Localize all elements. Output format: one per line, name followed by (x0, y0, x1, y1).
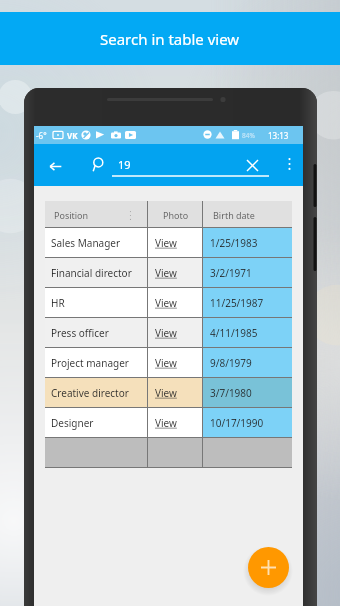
button[interactable]: Creative director (45, 378, 292, 408)
staticText: -6° (36, 130, 47, 141)
staticText: Position (54, 209, 89, 221)
staticText: View (155, 356, 177, 370)
staticText: 19 (118, 157, 131, 172)
button[interactable]: Project manager (45, 348, 292, 378)
staticText: 3/7/1980 (210, 386, 252, 400)
staticText: 1/25/1983 (210, 236, 258, 250)
staticText: Photo (163, 209, 189, 221)
staticText: 13:13 (268, 130, 289, 141)
button[interactable]: Add (248, 547, 289, 588)
staticText: Financial director (51, 266, 132, 280)
staticText: Birth date (213, 209, 255, 221)
button[interactable]: HR (45, 288, 292, 318)
staticText: View (155, 386, 177, 400)
staticText: 9/8/1979 (210, 356, 252, 370)
staticText: 3/2/1971 (210, 266, 252, 280)
staticText: Designer (51, 416, 94, 430)
staticText: HR (51, 296, 65, 310)
staticText: View (155, 326, 177, 340)
button[interactable]: Sales Manager (45, 228, 292, 258)
staticText: VK (67, 130, 78, 141)
staticText: 11/25/1987 (210, 296, 264, 310)
button[interactable]: Clear search (240, 153, 265, 178)
button[interactable]: More options (278, 153, 300, 175)
staticText: View (155, 416, 177, 430)
staticText: Press officer (51, 326, 109, 340)
button[interactable]: Back (42, 153, 69, 180)
staticText: Search in table view (100, 29, 240, 49)
staticText: 84% (242, 131, 255, 140)
staticText: View (155, 296, 177, 310)
staticText: Project manager (51, 356, 129, 370)
button[interactable]: Designer (45, 408, 292, 438)
staticText: 4/11/1985 (210, 326, 258, 340)
button[interactable]: Press officer (45, 318, 292, 348)
button[interactable]: Financial director (45, 258, 292, 288)
staticText: 10/17/1990 (210, 416, 264, 430)
staticText: Creative director (51, 386, 129, 400)
staticText: View (155, 236, 177, 250)
staticText: Sales Manager (51, 236, 121, 250)
staticText: View (155, 266, 177, 280)
